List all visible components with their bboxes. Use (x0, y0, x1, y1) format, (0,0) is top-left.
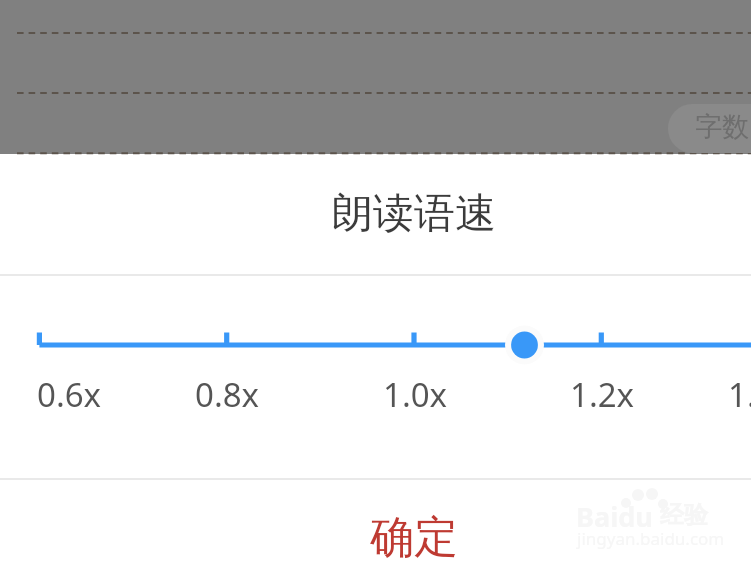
staticText: jingyan.baidu.com (577, 527, 725, 550)
staticText: 朗读语速 (332, 188, 496, 240)
button[interactable]: 朗读语速 (0, 274, 751, 478)
staticText: 确定 (370, 510, 458, 564)
staticText: 0.8x (195, 372, 260, 417)
button[interactable]: 确定 (0, 479, 751, 564)
button[interactable]: 字数 (668, 104, 751, 153)
staticText: 1.2x (570, 372, 635, 417)
staticText: 1.0x (383, 372, 448, 417)
staticText: 字数 (695, 110, 749, 144)
staticText: Baidu (576, 498, 653, 535)
staticText: 经验 (660, 500, 708, 530)
staticText: 0.6x (37, 372, 102, 417)
staticText: 1.4x (728, 372, 751, 417)
